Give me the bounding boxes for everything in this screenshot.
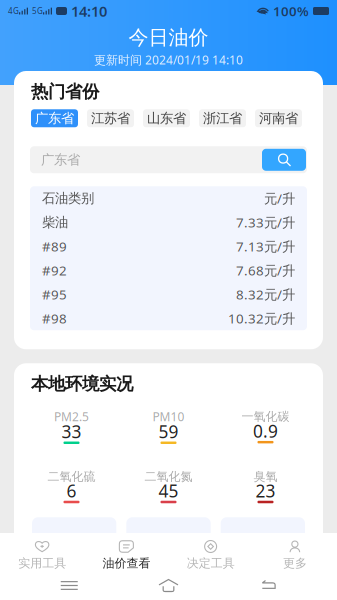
staticText: 本地环境实况 xyxy=(31,373,133,395)
staticText: 热门省份 xyxy=(31,81,99,102)
staticText: 广东省 xyxy=(35,110,74,126)
staticText: 更多 xyxy=(283,556,307,571)
staticText: #98 xyxy=(42,309,67,327)
staticText: 更新时间 2024/01/19 14:10 xyxy=(94,52,243,68)
staticText: 45 xyxy=(158,479,178,502)
button[interactable]: 山东省 xyxy=(143,109,190,127)
staticText: 二氧化硫 xyxy=(47,469,95,484)
staticText: 江苏省 xyxy=(91,110,130,126)
button[interactable]: 更多 xyxy=(253,533,337,571)
staticText: 8.32元/升 xyxy=(236,285,295,303)
button[interactable]: Back xyxy=(238,571,298,600)
staticText: 臭氧 xyxy=(253,469,277,484)
button[interactable]: 实用工具 xyxy=(0,533,84,571)
staticText: 14:10 xyxy=(71,1,107,21)
staticText: 4G xyxy=(8,6,19,16)
staticText: 元/升 xyxy=(264,189,295,207)
button[interactable]: 江苏省 xyxy=(87,109,134,127)
staticText: 6 xyxy=(66,479,76,502)
staticText: 33 xyxy=(61,420,81,443)
staticText: 二氧化氮 xyxy=(144,469,192,484)
staticText: PM2.5 xyxy=(54,409,89,424)
staticText: 山东省 xyxy=(147,110,186,126)
button[interactable]: Home xyxy=(138,571,198,600)
staticText: 河南省 xyxy=(259,110,298,126)
staticText: 实用工具 xyxy=(18,556,66,571)
staticText: 10.32元/升 xyxy=(228,309,295,327)
button[interactable]: 广东省 xyxy=(31,109,78,127)
staticText: 100% xyxy=(273,2,309,20)
button[interactable]: 油价查看 xyxy=(84,533,168,571)
staticText: PM10 xyxy=(152,409,184,424)
staticText: 0.9 xyxy=(253,419,278,442)
staticText: 决定工具 xyxy=(187,556,235,571)
staticText: 油价查看 xyxy=(102,556,150,571)
button[interactable]: 决定工具 xyxy=(168,533,253,571)
staticText: 一氧化碳 xyxy=(241,409,289,424)
staticText: 7.33元/升 xyxy=(236,213,295,231)
staticText: #95 xyxy=(42,285,67,303)
staticText: #89 xyxy=(42,237,67,255)
staticText: 5G xyxy=(32,6,43,16)
staticText: 柴油 xyxy=(42,214,68,230)
button[interactable]: 河南省 xyxy=(255,109,302,127)
staticText: 浙江省 xyxy=(203,110,242,126)
button[interactable]: Menu xyxy=(39,571,99,600)
staticText: 广东省 xyxy=(41,152,80,168)
staticText: 7.13元/升 xyxy=(236,237,295,255)
button[interactable]: 浙江省 xyxy=(199,109,246,127)
staticText: 今日油价 xyxy=(128,25,208,50)
staticText: #92 xyxy=(42,261,67,279)
staticText: 石油类别 xyxy=(42,190,94,206)
staticText: 59 xyxy=(158,420,178,443)
staticText: 23 xyxy=(255,479,275,502)
button[interactable]: 搜索 xyxy=(262,149,306,171)
staticText: 7.68元/升 xyxy=(236,261,295,279)
